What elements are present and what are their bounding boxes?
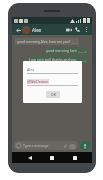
button[interactable]: Camera <box>69 143 75 149</box>
staticText: 9:15 <box>72 41 77 44</box>
staticText: OK <box>51 92 56 97</box>
button[interactable]: good morning Alex, how are you? <box>15 38 79 45</box>
staticText: good morning Alex, how are you? <box>17 39 71 44</box>
button[interactable]: Video call <box>64 25 73 34</box>
staticText: 9:15 <box>78 59 83 62</box>
button[interactable]: Recent apps <box>70 153 80 163</box>
staticText: good morning Sam <box>46 48 77 53</box>
button[interactable]: More options <box>82 25 91 34</box>
button[interactable]: Alex <box>27 67 78 74</box>
staticText: Type a message <box>23 143 49 148</box>
staticText: 9:15 <box>78 50 83 53</box>
button[interactable]: I am very well thanks and you <box>27 56 89 63</box>
button[interactable]: Attach <box>62 143 68 149</box>
staticText: @WaCleaner <box>27 79 49 84</box>
button[interactable]: Contact photo <box>22 26 30 34</box>
button[interactable]: Voice call <box>73 25 82 34</box>
button[interactable]: Record voice message <box>80 141 90 150</box>
button[interactable]: @WaCleaner <box>27 79 78 86</box>
button[interactable]: Alex <box>32 27 64 33</box>
button[interactable]: good morning Sam <box>44 47 89 54</box>
button[interactable]: Back <box>25 153 35 163</box>
staticText: I am very well thanks and you <box>29 57 77 62</box>
button[interactable]: Home <box>47 153 57 163</box>
staticText: Alex <box>27 67 35 72</box>
button[interactable]: Back <box>14 26 22 34</box>
staticText: Alex <box>32 27 42 33</box>
button[interactable]: Type a message <box>14 141 78 150</box>
button[interactable]: OK <box>46 91 60 98</box>
